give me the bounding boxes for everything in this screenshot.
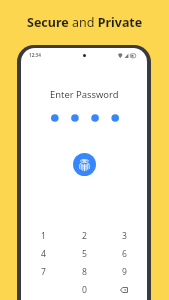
button[interactable]: 5 bbox=[64, 245, 104, 263]
button[interactable]: Unlock with fingerprint bbox=[73, 153, 96, 176]
button[interactable]: 1 bbox=[23, 227, 64, 245]
button[interactable]: 7 bbox=[23, 263, 64, 281]
button[interactable]: 4 bbox=[23, 245, 64, 263]
staticText: 2 bbox=[82, 230, 87, 242]
button[interactable]: Backspace bbox=[104, 281, 144, 299]
button[interactable]: 3 bbox=[104, 227, 144, 245]
staticText: 3 bbox=[122, 230, 127, 242]
staticText: 8 bbox=[82, 266, 87, 278]
staticText: 5 bbox=[82, 248, 87, 260]
staticText: Secure and Private bbox=[27, 14, 143, 31]
staticText: 7 bbox=[41, 266, 46, 278]
button[interactable]: 8 bbox=[64, 263, 104, 281]
staticText: Enter Password bbox=[50, 88, 119, 101]
staticText: 12:34 bbox=[29, 52, 41, 58]
button[interactable]: 6 bbox=[104, 245, 144, 263]
button[interactable]: 9 bbox=[104, 263, 144, 281]
staticText: 4 bbox=[41, 248, 46, 260]
staticText: 1 bbox=[41, 230, 46, 242]
button[interactable]: 2 bbox=[64, 227, 104, 245]
staticText: 9 bbox=[122, 266, 127, 278]
other: Password entry bbox=[51, 110, 119, 126]
staticText: 6 bbox=[122, 248, 127, 260]
button[interactable]: 0 bbox=[64, 281, 104, 299]
staticText: 0 bbox=[82, 284, 87, 296]
